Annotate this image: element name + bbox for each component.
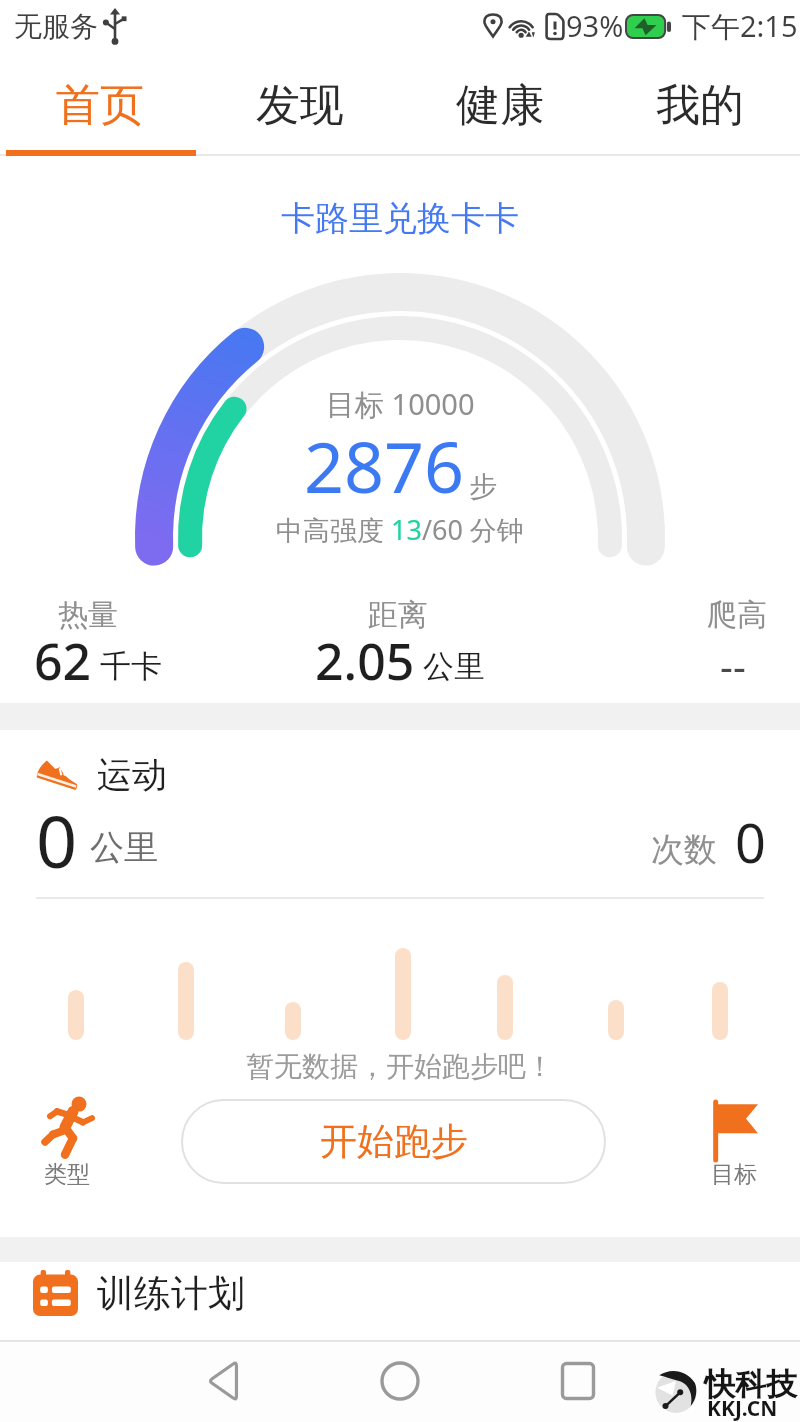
button[interactable]: 开始跑步 <box>181 1099 606 1184</box>
staticText: 目标 <box>711 1160 757 1189</box>
button[interactable]: 卡路里兑换卡卡 <box>200 178 600 258</box>
staticText: 0 <box>735 805 766 879</box>
staticText: 我的 <box>656 78 744 133</box>
button[interactable]: 首页 <box>0 55 200 156</box>
staticText: 下午2:15 <box>682 6 798 46</box>
staticText: 卡路里兑换卡卡 <box>281 197 519 240</box>
button[interactable] <box>155 1340 289 1422</box>
staticText: 开始跑步 <box>320 1118 468 1165</box>
staticText: 首页 <box>56 78 144 133</box>
staticText: 中高强度 13/60 分钟 <box>276 511 524 548</box>
staticText: 快科技 <box>704 1365 797 1404</box>
staticText: 暂无数据，开始跑步吧！ <box>246 1049 554 1084</box>
staticText: 健康 <box>456 78 544 133</box>
button[interactable] <box>0 1262 800 1340</box>
staticText: 距离 <box>368 596 428 634</box>
staticText: 公里 <box>423 647 485 686</box>
staticText: 发现 <box>256 78 344 133</box>
staticText: 步 <box>469 469 497 504</box>
staticText: 次数 <box>651 829 717 871</box>
button[interactable] <box>700 1095 770 1190</box>
staticText: 千卡 <box>100 647 162 686</box>
staticText: 热量 <box>58 596 118 634</box>
staticText: KKJ.CN <box>707 1394 778 1422</box>
staticText: -- <box>720 638 746 688</box>
staticText: 类型 <box>44 1160 90 1189</box>
button[interactable] <box>333 1340 467 1422</box>
staticText: 目标 10000 <box>326 384 475 424</box>
staticText: 0 <box>36 791 78 881</box>
staticText: 爬高 <box>707 596 767 634</box>
button[interactable] <box>0 730 800 1237</box>
staticText: 2.05 <box>315 627 415 689</box>
staticText: 无服务 <box>14 9 98 44</box>
button[interactable]: 健康 <box>400 55 600 156</box>
button[interactable] <box>30 1095 110 1190</box>
staticText: 62 <box>34 627 92 689</box>
staticText: 训练计划 <box>97 1270 245 1317</box>
staticText: 93% <box>566 6 624 45</box>
button[interactable] <box>511 1340 645 1422</box>
staticText: 运动 <box>97 753 167 797</box>
button[interactable]: 我的 <box>600 55 800 156</box>
button[interactable]: 发现 <box>200 55 400 156</box>
staticText: 2876 <box>304 418 465 513</box>
staticText: 公里 <box>90 826 158 869</box>
